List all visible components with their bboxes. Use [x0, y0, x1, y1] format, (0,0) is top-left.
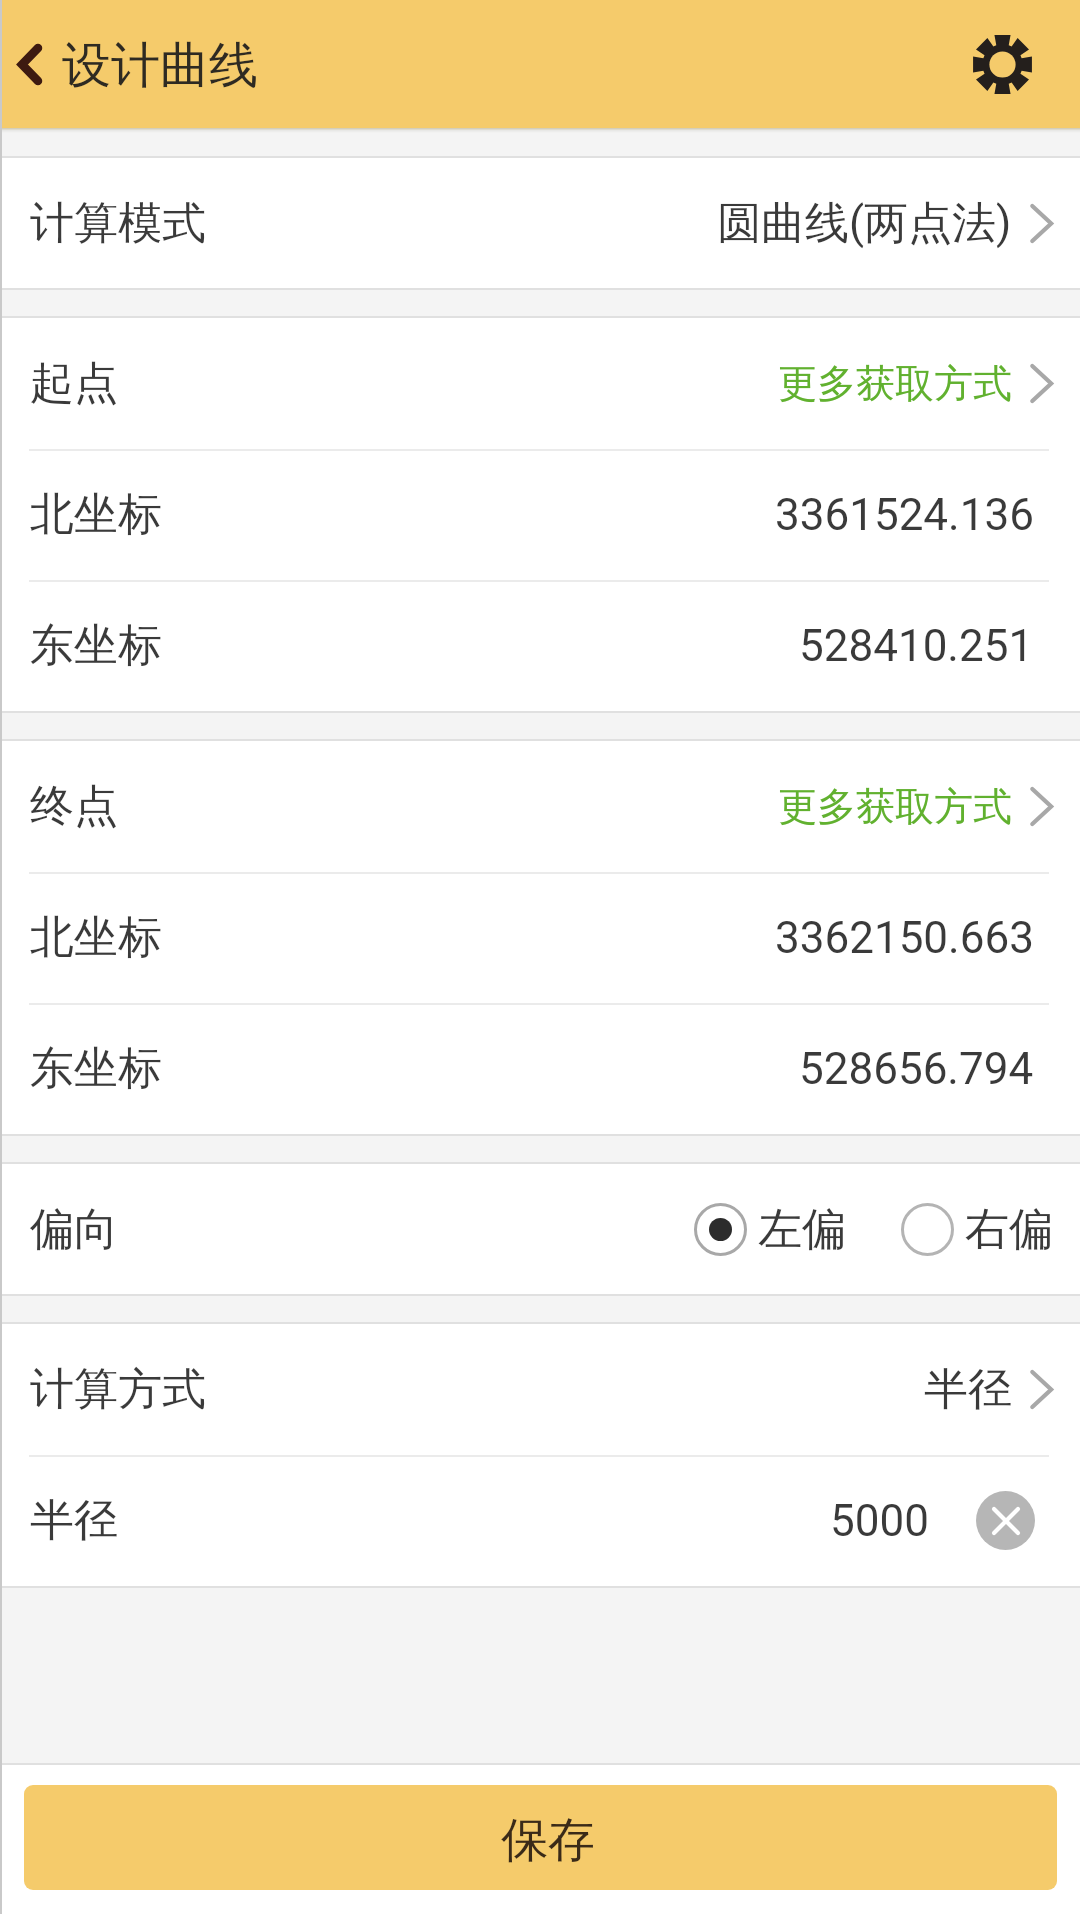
- staticText: 北坐标: [30, 910, 162, 965]
- staticText: 3362150.663: [775, 912, 1034, 964]
- staticText: 更多获取方式: [778, 359, 1012, 408]
- button[interactable]: Settings: [924, 0, 1080, 128]
- button[interactable]: 东坐标: [0, 580, 1080, 711]
- staticText: 计算模式: [30, 196, 206, 251]
- staticText: 半径: [30, 1493, 118, 1548]
- button[interactable]: 计算方式: [0, 1324, 1080, 1455]
- button[interactable]: 起点: [0, 318, 1080, 449]
- button[interactable]: 右偏: [901, 1164, 1053, 1294]
- staticText: 设计曲线: [62, 35, 258, 97]
- button[interactable]: 终点: [0, 741, 1080, 872]
- staticText: 528656.794: [799, 1043, 1034, 1095]
- staticText: 圆曲线(两点法): [717, 196, 1012, 251]
- staticText: 东坐标: [30, 1041, 162, 1096]
- staticText: 东坐标: [30, 618, 162, 673]
- staticText: 左偏: [758, 1202, 846, 1257]
- staticText: 偏向: [30, 1202, 118, 1257]
- staticText: 计算方式: [30, 1362, 206, 1417]
- staticText: 3361524.136: [775, 489, 1034, 541]
- button[interactable]: 保存: [24, 1785, 1057, 1890]
- staticText: 5000: [830, 1495, 929, 1547]
- staticText: 右偏: [965, 1202, 1053, 1257]
- staticText: 半径: [924, 1362, 1012, 1417]
- staticText: 528410.251: [799, 620, 1034, 672]
- staticText: 更多获取方式: [778, 782, 1012, 831]
- staticText: 终点: [30, 779, 118, 834]
- button[interactable]: 左偏: [694, 1164, 846, 1294]
- button[interactable]: 东坐标: [0, 1003, 1080, 1134]
- staticText: 北坐标: [30, 487, 162, 542]
- button[interactable]: 偏向: [0, 1164, 1080, 1294]
- button[interactable]: Clear: [976, 1491, 1035, 1550]
- button[interactable]: 计算模式: [0, 158, 1080, 288]
- button[interactable]: Back: [0, 0, 274, 128]
- button[interactable]: 北坐标: [0, 872, 1080, 1003]
- staticText: 保存: [501, 1811, 595, 1870]
- button[interactable]: 北坐标: [0, 449, 1080, 580]
- staticText: 起点: [30, 356, 118, 411]
- button[interactable]: 半径: [0, 1455, 1080, 1586]
- other: Back: [18, 44, 42, 85]
